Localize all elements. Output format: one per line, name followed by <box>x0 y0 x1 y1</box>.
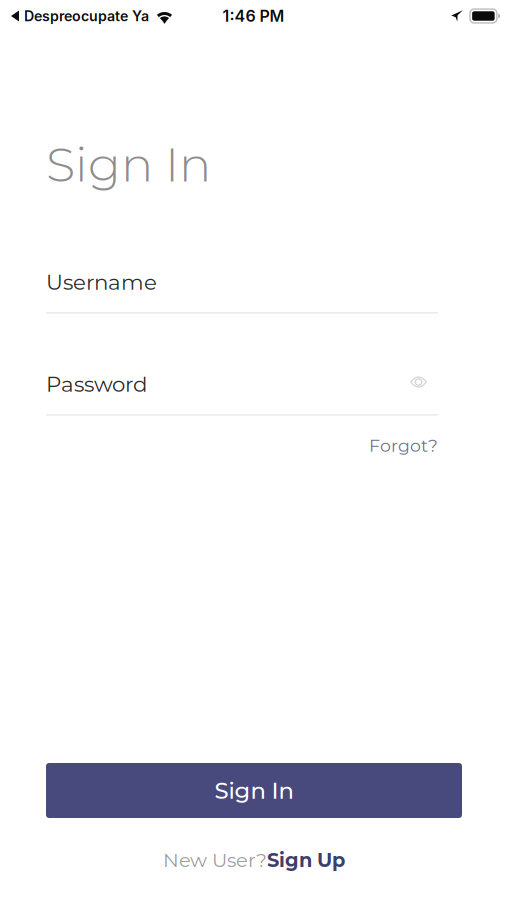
button[interactable]: New User? <box>46 844 462 876</box>
staticText: Sign In <box>46 135 211 193</box>
staticText: Forgot? <box>369 435 438 456</box>
staticText: Password <box>46 371 147 397</box>
staticText: Sign Up <box>267 848 345 872</box>
staticText: Despreocupate Ya <box>24 7 149 24</box>
button[interactable]: Forgot? <box>46 432 438 458</box>
staticText: 1:46 PM <box>222 6 284 26</box>
staticText: New User? <box>163 848 267 872</box>
button[interactable]: Sign In <box>46 763 462 818</box>
button[interactable]: Show password <box>402 373 438 394</box>
staticText: Sign In <box>214 777 293 804</box>
staticText: Username <box>46 269 157 295</box>
